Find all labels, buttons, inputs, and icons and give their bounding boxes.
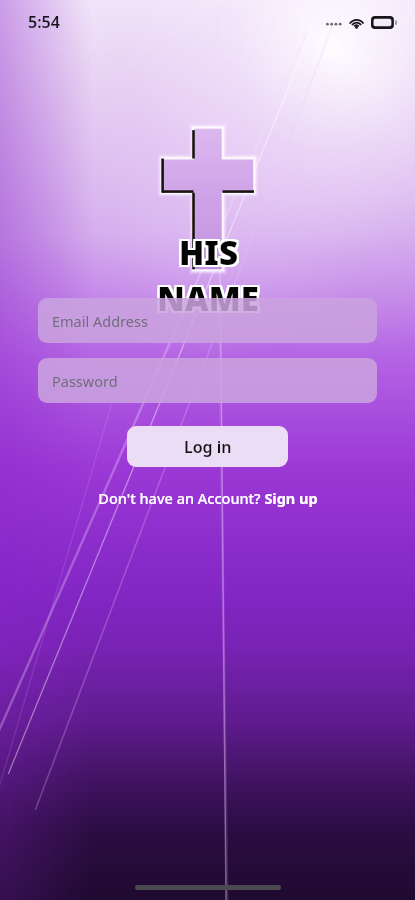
staticText: NAME — [157, 276, 259, 321]
staticText: Password — [52, 371, 118, 391]
staticText: NAME — [159, 274, 261, 319]
staticText: HIS — [181, 230, 240, 275]
staticText: 5:54 — [28, 11, 60, 33]
staticText: NAME — [159, 276, 261, 321]
staticText: HIS — [177, 230, 236, 275]
staticText: NAME — [155, 278, 257, 323]
button[interactable]: Log in — [127, 426, 288, 467]
staticText: NAME — [157, 274, 259, 319]
staticText: NAME — [157, 278, 259, 323]
staticText: NAME — [155, 274, 257, 319]
staticText: HIS — [179, 228, 238, 273]
staticText: HIS — [181, 228, 240, 273]
button[interactable]: Don't have an Account? Sign up — [92, 485, 324, 511]
staticText: Email Address — [52, 311, 148, 331]
staticText: Don't have an Account? Sign up — [98, 488, 318, 508]
staticText: HIS — [181, 232, 240, 277]
staticText: HIS — [179, 230, 238, 275]
staticText: NAME — [159, 278, 261, 323]
staticText: HIS — [177, 228, 236, 273]
staticText: NAME — [155, 276, 257, 321]
button[interactable]: Email Address — [38, 298, 377, 343]
button[interactable]: Password — [38, 358, 377, 403]
staticText: HIS — [179, 232, 238, 277]
staticText: HIS — [177, 232, 236, 277]
staticText: Log in — [184, 436, 232, 458]
